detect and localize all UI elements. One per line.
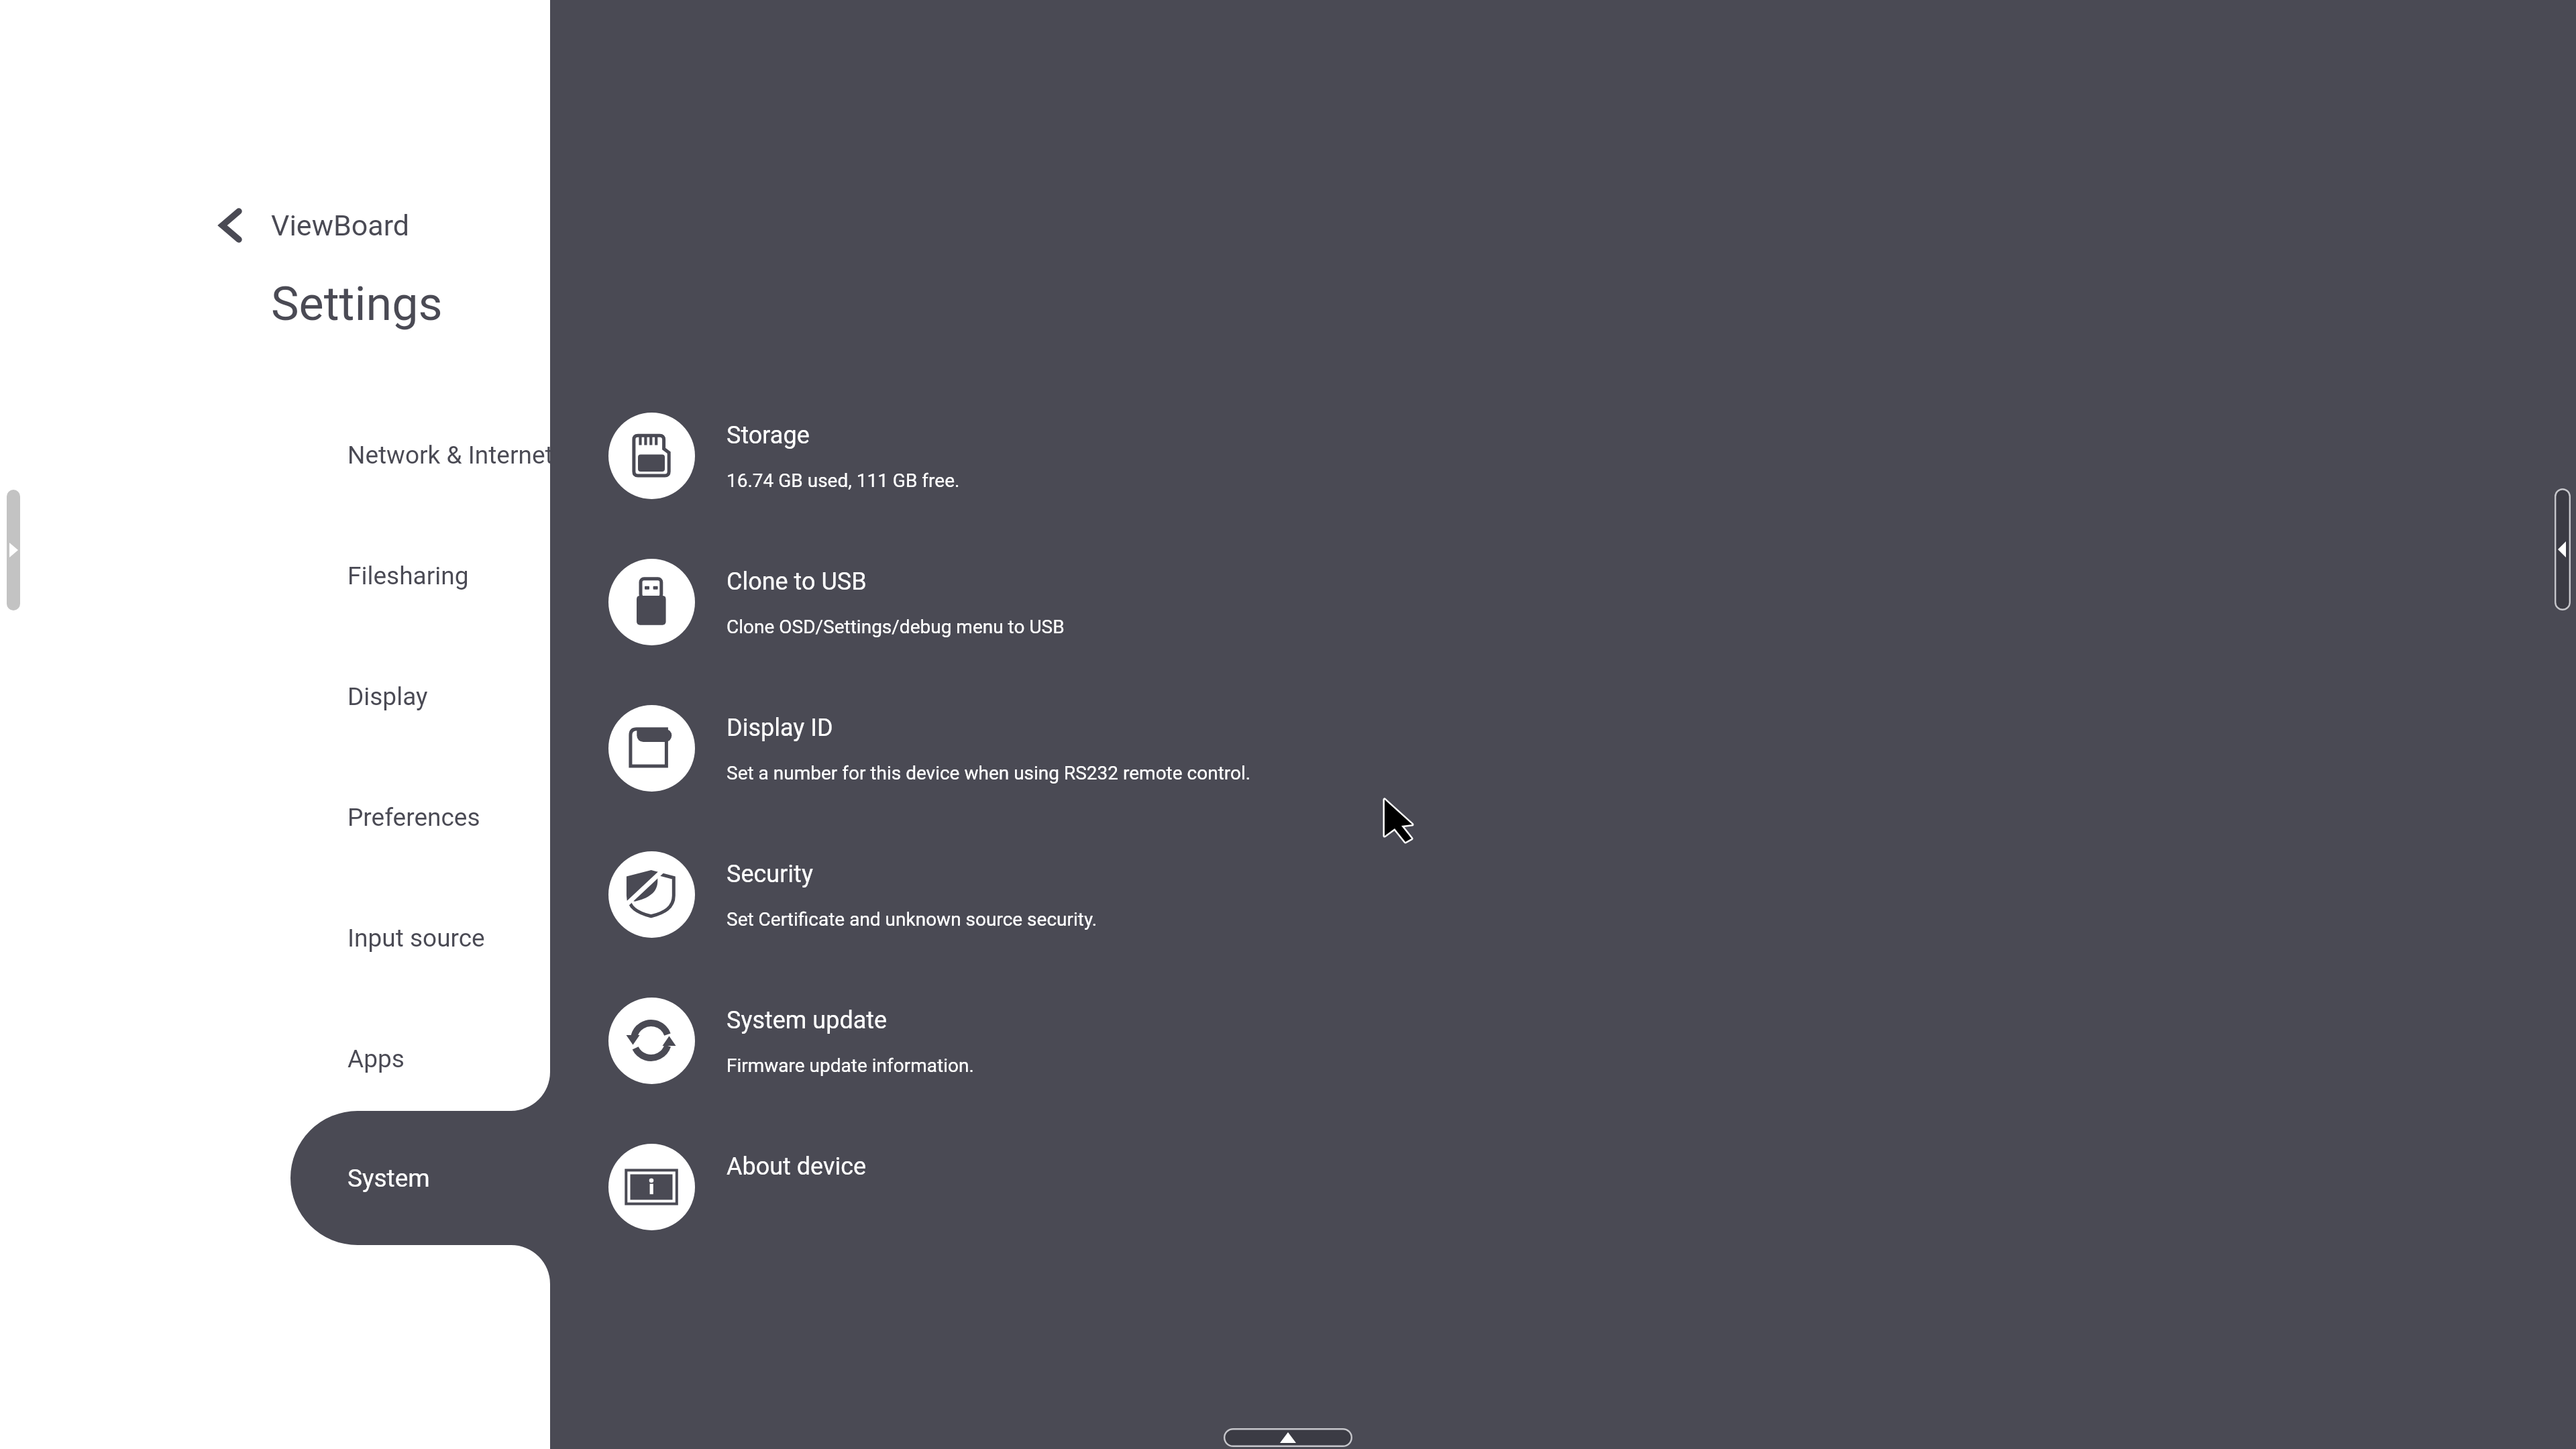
staticText: System update <box>727 1006 888 1034</box>
button[interactable]: Display ID <box>590 684 1932 812</box>
button[interactable]: Input source <box>221 898 550 978</box>
staticText: About device <box>727 1152 867 1181</box>
staticText: Set Certificate and unknown source secur… <box>727 908 1097 930</box>
staticText: Set a number for this device when using … <box>727 762 1251 784</box>
staticText: 16.74 GB used, 111 GB free. <box>727 470 960 492</box>
staticText: ViewBoard <box>271 209 410 242</box>
button[interactable]: Clone to USB <box>590 538 1932 665</box>
button[interactable]: About device <box>590 1123 1932 1250</box>
staticText: Preferences <box>347 803 480 832</box>
button[interactable]: System <box>290 1111 550 1245</box>
staticText: Storage <box>727 421 810 449</box>
staticText: Display <box>347 682 428 711</box>
staticText: Apps <box>347 1044 405 1073</box>
button[interactable]: Back <box>208 201 423 250</box>
button[interactable]: Network & Internet <box>221 415 550 495</box>
staticText: Input source <box>347 924 485 953</box>
staticText: Network & Internet <box>347 441 553 470</box>
button[interactable]: Storage <box>590 392 1932 519</box>
button[interactable]: System update <box>590 977 1932 1104</box>
button[interactable]: Security <box>590 830 1932 958</box>
staticText: Clone to USB <box>727 568 867 596</box>
staticText: Settings <box>271 276 443 331</box>
button[interactable]: Open toolbar <box>2555 488 2571 610</box>
button[interactable]: Filesharing <box>221 535 550 616</box>
button[interactable]: Apps <box>221 1018 550 1099</box>
staticText: Security <box>727 860 813 888</box>
button[interactable]: Show navigation bar <box>1224 1428 1352 1447</box>
staticText: Clone OSD/Settings/debug menu to USB <box>727 616 1065 638</box>
button[interactable]: Open side panel <box>7 490 20 610</box>
staticText: Firmware update information. <box>727 1055 974 1077</box>
staticText: System <box>347 1164 430 1193</box>
other: Back <box>218 208 242 243</box>
button[interactable]: Display <box>221 656 550 737</box>
staticText: Filesharing <box>347 561 469 590</box>
button[interactable]: Preferences <box>221 777 550 857</box>
staticText: Display ID <box>727 714 833 742</box>
